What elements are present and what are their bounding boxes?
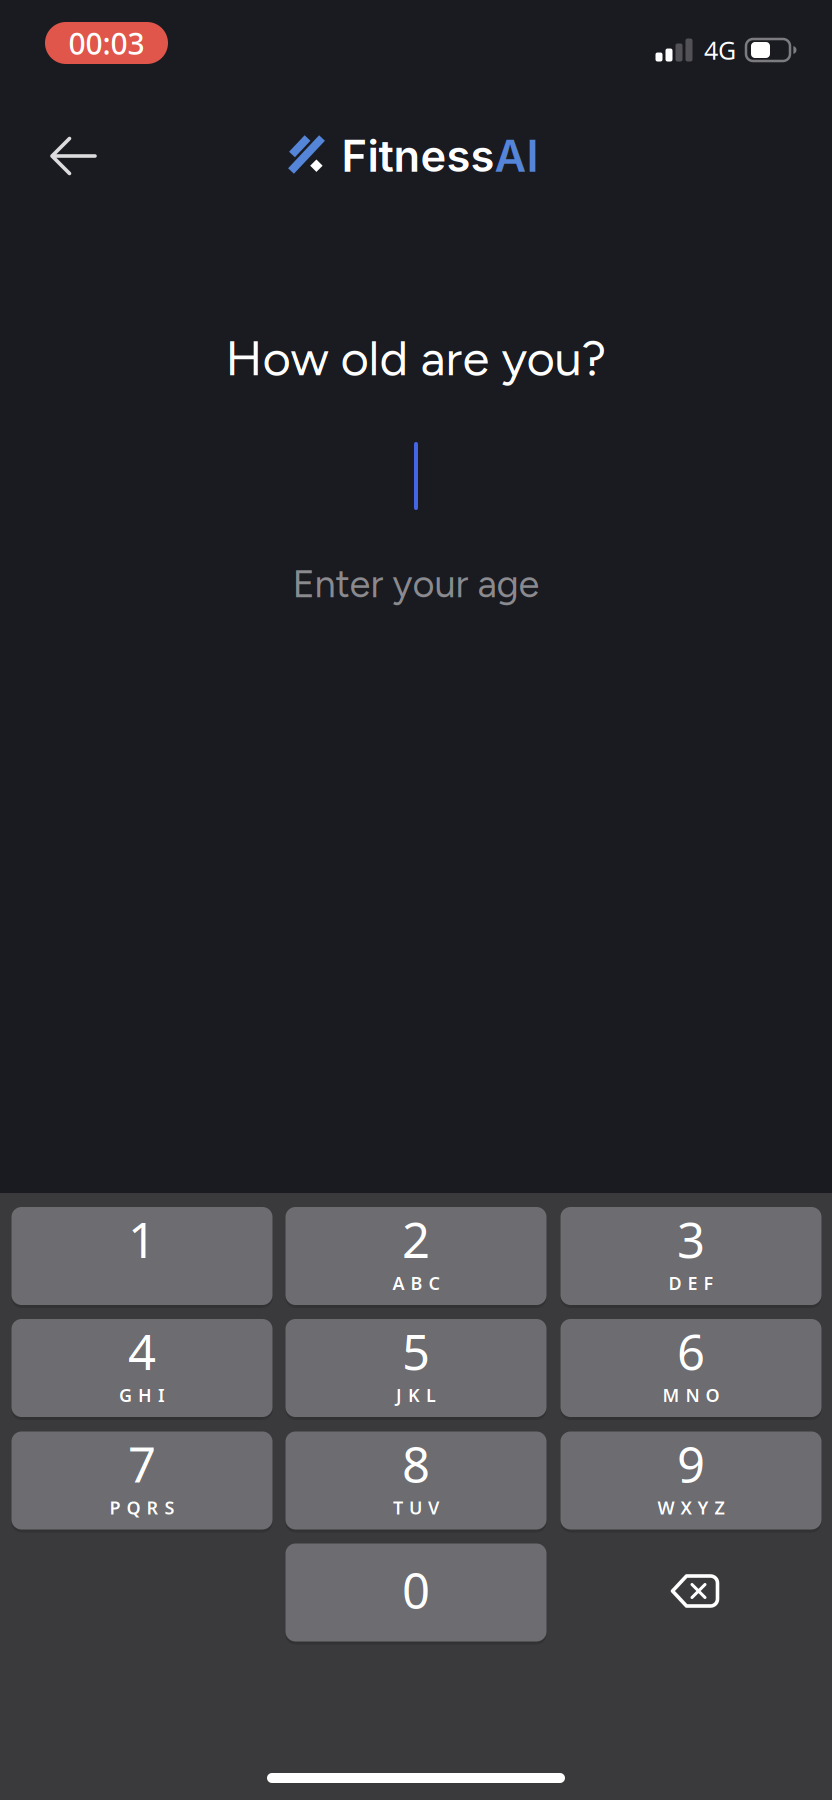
staticText: 6 (677, 1318, 705, 1384)
button[interactable]: 1 (11, 1207, 272, 1307)
staticText: J K L (396, 1383, 436, 1407)
button[interactable]: Delete (635, 1542, 755, 1640)
staticText: M N O (662, 1383, 719, 1407)
staticText: 0 (402, 1556, 430, 1623)
button[interactable]: 0 (285, 1543, 546, 1643)
staticText: 4 (128, 1318, 156, 1384)
button[interactable]: 7 (11, 1431, 272, 1531)
button[interactable]: 3 (560, 1207, 821, 1307)
staticText: G H I (119, 1383, 165, 1407)
button[interactable]: 2 (285, 1207, 546, 1307)
staticText: 2 (402, 1206, 430, 1272)
button[interactable]: 8 (285, 1431, 546, 1531)
staticText: 1 (128, 1206, 156, 1272)
staticText: 8 (402, 1430, 430, 1497)
staticText: 4G (704, 33, 736, 67)
button[interactable]: 5 (285, 1319, 546, 1419)
staticText: A B C (392, 1271, 439, 1295)
button[interactable]: Enter your age (0, 432, 832, 622)
button[interactable]: 6 (560, 1319, 821, 1419)
staticText: 3 (677, 1206, 705, 1272)
button[interactable]: Return to call (45, 22, 168, 64)
staticText: 5 (402, 1318, 430, 1384)
staticText: Fitness (341, 130, 494, 182)
button[interactable]: Back (32, 121, 112, 191)
staticText: D E F (668, 1271, 713, 1295)
staticText: W X Y Z (657, 1495, 724, 1520)
staticText: Enter your age (292, 561, 539, 607)
button[interactable]: 4 (11, 1319, 272, 1419)
staticText: 7 (128, 1430, 156, 1497)
staticText: T U V (393, 1495, 439, 1520)
staticText: 00:03 (68, 23, 144, 63)
button[interactable]: 9 (560, 1431, 821, 1531)
staticText: P Q R S (109, 1495, 174, 1520)
staticText: 9 (677, 1430, 705, 1497)
staticText: How old are you? (225, 329, 606, 387)
staticText: AI (494, 130, 538, 182)
